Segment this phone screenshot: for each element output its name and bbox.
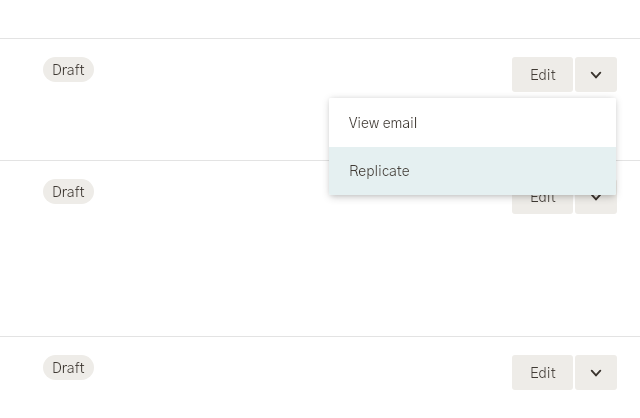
staticText: Edit: [530, 69, 556, 83]
button[interactable]: Edit: [512, 179, 573, 214]
button[interactable]: Replicate: [329, 147, 616, 195]
staticText: Draft: [52, 362, 85, 376]
button[interactable]: Edit: [512, 355, 573, 390]
button[interactable]: More actions: [575, 57, 617, 92]
button[interactable]: View email: [329, 98, 616, 147]
staticText: View email: [349, 117, 418, 131]
staticText: Edit: [530, 367, 556, 381]
staticText: Edit: [530, 191, 556, 205]
button[interactable]: Draft: [43, 57, 94, 82]
button[interactable]: Edit: [512, 57, 573, 92]
staticText: Draft: [52, 64, 85, 78]
button[interactable]: More actions: [575, 179, 617, 214]
button[interactable]: Draft: [43, 179, 94, 204]
staticText: Draft: [52, 186, 85, 200]
button[interactable]: More actions: [575, 355, 617, 390]
staticText: Replicate: [349, 165, 410, 179]
button[interactable]: Draft: [43, 355, 94, 380]
